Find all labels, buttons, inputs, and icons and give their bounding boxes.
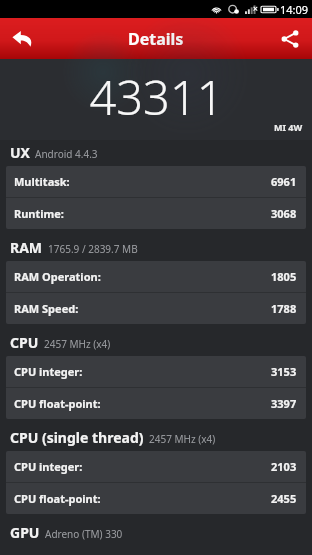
staticText: MI 4W xyxy=(274,121,303,133)
staticText: CPU integer: xyxy=(14,459,83,474)
button[interactable]: CPU float-point: xyxy=(6,388,306,419)
staticText: RAM Speed: xyxy=(14,301,79,316)
button[interactable]: Back xyxy=(0,18,44,59)
staticText: GPU xyxy=(10,523,40,542)
staticText: 3068 xyxy=(271,206,297,221)
staticText: 14:09 xyxy=(280,2,309,17)
staticText: CPU float-point: xyxy=(14,396,101,411)
staticText: 2457 MHz (x4) xyxy=(149,432,216,446)
staticText: 3397 xyxy=(271,396,297,411)
staticText: 1765.9 / 2839.7 MB xyxy=(48,242,138,256)
staticText: CPU xyxy=(10,333,39,352)
staticText: Adreno (TM) 330 xyxy=(45,527,123,541)
staticText: 2457 MHz (x4) xyxy=(44,337,111,351)
staticText: Android 4.4.3 xyxy=(35,147,98,161)
button[interactable]: Multitask: xyxy=(6,166,306,197)
staticText: UX xyxy=(10,143,30,162)
staticText: 6961 xyxy=(271,174,297,189)
staticText: 2455 xyxy=(271,491,297,506)
button[interactable]: Runtime: xyxy=(6,198,306,229)
staticText: CPU (single thread) xyxy=(10,428,144,447)
staticText: Multitask: xyxy=(14,174,70,189)
staticText: RAM Operation: xyxy=(14,269,101,284)
staticText: Details xyxy=(128,28,184,50)
button[interactable]: RAM Operation: xyxy=(6,261,306,292)
staticText: 1805 xyxy=(271,269,297,284)
button[interactable]: CPU integer: xyxy=(6,451,306,482)
button[interactable]: RAM Speed: xyxy=(6,293,306,324)
button[interactable]: Share xyxy=(268,18,312,59)
staticText: CPU integer: xyxy=(14,364,83,379)
staticText: 43311 xyxy=(89,65,224,129)
staticText: 3153 xyxy=(271,364,297,379)
button[interactable]: CPU integer: xyxy=(6,356,306,387)
staticText: CPU float-point: xyxy=(14,491,101,506)
staticText: 1788 xyxy=(271,301,297,316)
staticText: RAM xyxy=(10,238,43,257)
staticText: 2103 xyxy=(271,459,297,474)
button[interactable]: CPU float-point: xyxy=(6,483,306,514)
staticText: Runtime: xyxy=(14,206,64,221)
